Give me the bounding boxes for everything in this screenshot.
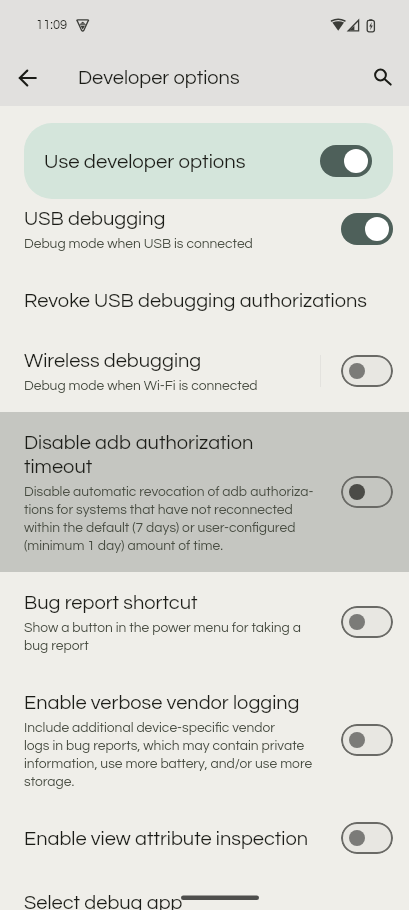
- staticText: Enable view attribute inspection: [24, 826, 309, 850]
- button[interactable]: Enable view attribute inspection: [341, 822, 393, 854]
- staticText: Debug mode when Wi-Fi is connected: [24, 376, 258, 394]
- staticText: Revoke USB debugging authorizations: [24, 288, 367, 312]
- staticText: Bug report shortcut: [24, 590, 198, 614]
- button[interactable]: Select debug app: [0, 872, 409, 910]
- staticText: Include additional device-specific vendo…: [24, 718, 313, 790]
- staticText: Wireless debugging: [24, 348, 202, 372]
- button[interactable]: USB debugging: [0, 199, 409, 270]
- button[interactable]: Bug report shortcut: [341, 606, 393, 638]
- staticText: Enable verbose vendor logging: [24, 690, 300, 714]
- staticText: Debug mode when USB is connected: [24, 234, 253, 252]
- staticText: Use developer options: [44, 149, 320, 173]
- button[interactable]: Back: [4, 53, 52, 101]
- button[interactable]: Enable verbose vendor logging: [341, 724, 393, 756]
- button[interactable]: Search: [358, 53, 406, 101]
- button[interactable]: Disable adb authorization timeout: [0, 412, 409, 572]
- button[interactable]: Enable verbose vendor logging: [0, 672, 409, 804]
- button[interactable]: USB debugging: [341, 213, 393, 245]
- button[interactable]: Bug report shortcut: [0, 572, 409, 672]
- staticText: 11:09: [36, 18, 68, 31]
- staticText: Disable adb authorization timeout: [24, 430, 254, 478]
- button[interactable]: Disable adb authorization timeout: [341, 476, 393, 508]
- staticText: Show a button in the power menu for taki…: [24, 618, 301, 654]
- button[interactable]: Revoke USB debugging authorizations: [0, 270, 409, 330]
- staticText: Developer options: [78, 68, 240, 89]
- staticText: Disable automatic revocation of adb auth…: [24, 482, 314, 554]
- button[interactable]: Use developer options: [24, 123, 393, 199]
- button[interactable]: Wireless debugging: [0, 330, 409, 412]
- button[interactable]: Enable view attribute inspection: [0, 804, 409, 872]
- staticText: USB debugging: [24, 206, 166, 230]
- staticText: Select debug app: [24, 890, 183, 910]
- button[interactable]: Wireless debugging: [341, 355, 393, 387]
- button[interactable]: Use developer options: [320, 145, 372, 177]
